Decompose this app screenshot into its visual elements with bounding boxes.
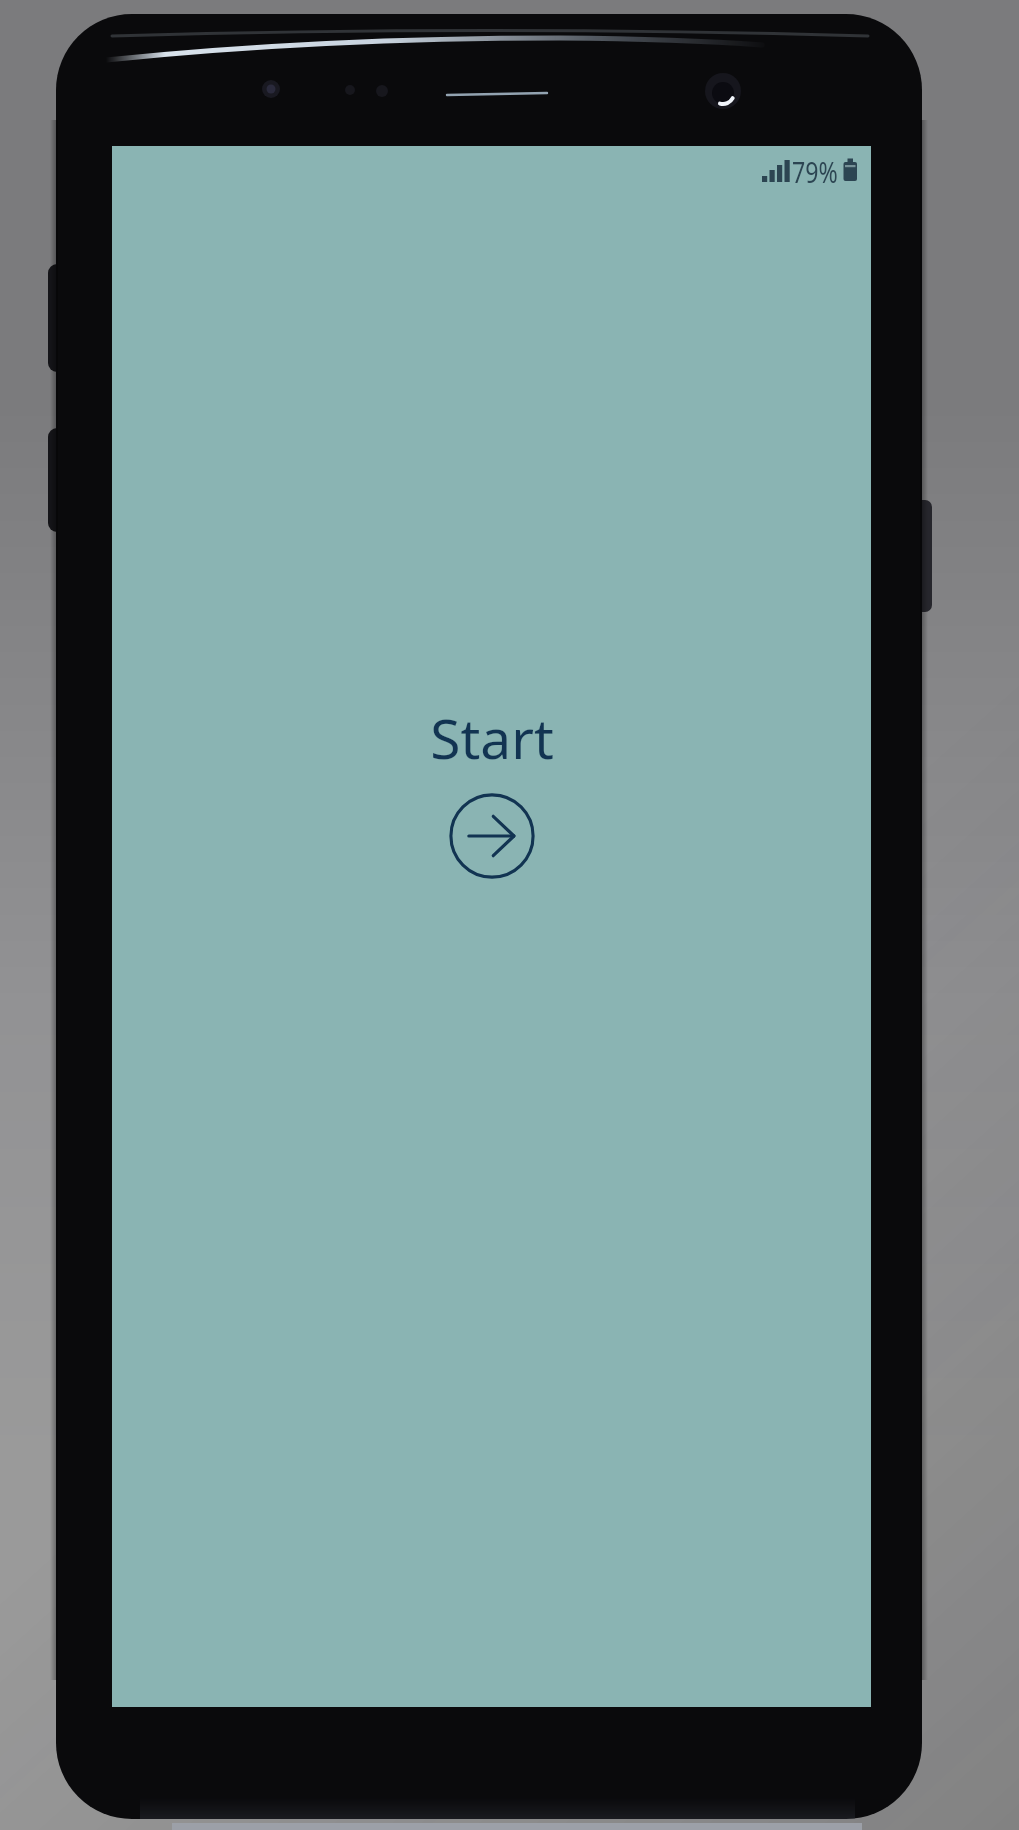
button[interactable]: Start <box>444 788 540 884</box>
staticText: 79% <box>792 152 838 186</box>
staticText: Start <box>430 700 554 766</box>
button[interactable]: Start <box>352 700 632 766</box>
